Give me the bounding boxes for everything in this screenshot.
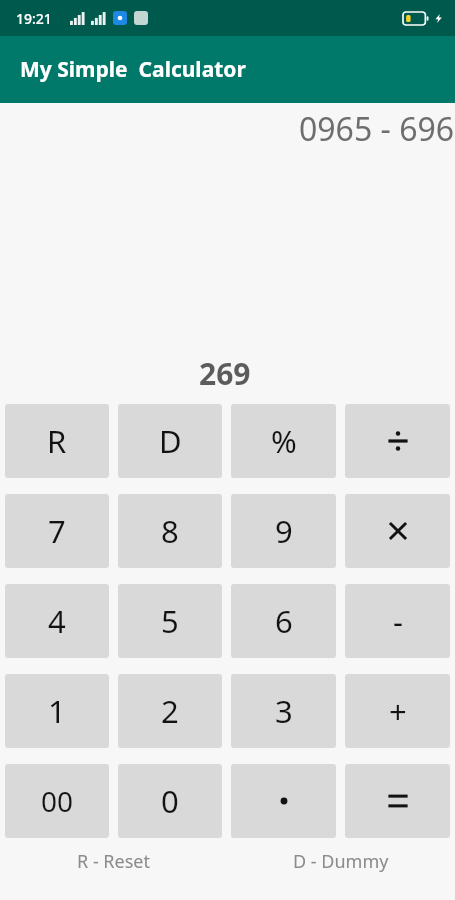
staticText: R [47,420,67,462]
button[interactable]: 8 [118,494,222,568]
button[interactable]: 5 [118,584,222,658]
button[interactable]: R [5,404,109,478]
button[interactable]: - [345,584,450,658]
staticText: 1 [48,690,66,732]
button[interactable]: 1 [5,674,109,748]
button[interactable]: Multiply [345,494,450,568]
staticText: 2 [161,690,179,732]
staticText: 7 [48,510,66,552]
button[interactable]: 6 [231,584,336,658]
staticText: 5 [161,600,179,642]
staticText: - [393,600,403,642]
staticText: 3 [275,690,293,732]
staticText: D [159,420,182,462]
button[interactable]: % [231,404,336,478]
staticText: D - Dummy [293,849,389,874]
staticText: + [389,690,407,732]
button[interactable]: + [345,674,450,748]
staticText: R - Reset [77,849,150,874]
button[interactable]: 0 [118,764,222,838]
staticText: % [271,420,297,462]
button[interactable]: 4 [5,584,109,658]
staticText: 269 [199,353,251,393]
button[interactable]: Decimal point [231,764,336,838]
staticText: My Simple Calculator [20,55,246,84]
button[interactable]: 00 [5,764,109,838]
staticText: 8 [161,510,179,552]
button[interactable]: D [118,404,222,478]
staticText: 00 [41,782,74,820]
button[interactable]: 7 [5,494,109,568]
button[interactable]: Equals [345,764,450,838]
staticText: 4 [48,600,66,642]
button[interactable]: 2 [118,674,222,748]
button[interactable]: Divide [345,404,450,478]
staticText: 6 [275,600,293,642]
staticText: 0 [161,780,179,822]
button[interactable]: 3 [231,674,336,748]
staticText: 19:21 [16,9,52,28]
staticText: 9 [275,510,293,552]
button[interactable]: 9 [231,494,336,568]
staticText: 0965 - 696 [299,107,455,151]
